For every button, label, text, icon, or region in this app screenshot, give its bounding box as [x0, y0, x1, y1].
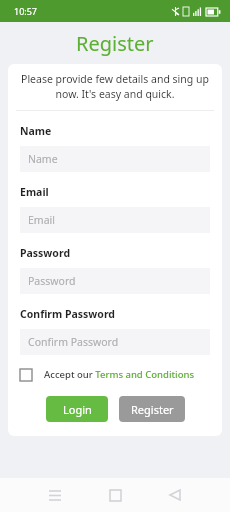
staticText: Password: [20, 246, 71, 260]
staticText: Name: [28, 152, 58, 166]
staticText: Confirm Password: [20, 307, 116, 321]
staticText: Accept our Terms and Conditions: [44, 368, 195, 381]
staticText: Name: [20, 124, 52, 138]
button[interactable]: Email: [20, 207, 210, 233]
button[interactable]: Login: [46, 396, 108, 422]
button[interactable]: Home: [100, 480, 130, 510]
button[interactable]: Name: [20, 146, 210, 172]
staticText: Register: [76, 30, 154, 57]
button[interactable]: Confirm Password: [20, 329, 210, 355]
button[interactable]: Password: [20, 268, 210, 294]
button[interactable]: Recent apps: [40, 480, 70, 510]
staticText: Email: [28, 213, 55, 227]
staticText: Register: [131, 402, 174, 417]
staticText: Email: [20, 185, 49, 199]
button[interactable]: Back: [160, 480, 190, 510]
staticText: 10:57: [14, 5, 38, 17]
staticText: Password: [28, 274, 76, 288]
staticText: Confirm Password: [28, 335, 119, 349]
button[interactable]: Accept our Terms and Conditions: [20, 368, 210, 381]
staticText: Please provide few details and sing up n…: [18, 72, 212, 101]
staticText: Login: [63, 402, 92, 417]
button[interactable]: Register: [119, 396, 185, 422]
